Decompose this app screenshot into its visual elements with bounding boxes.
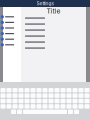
staticText: Settings [36, 1, 53, 6]
staticText: Title [46, 7, 60, 15]
